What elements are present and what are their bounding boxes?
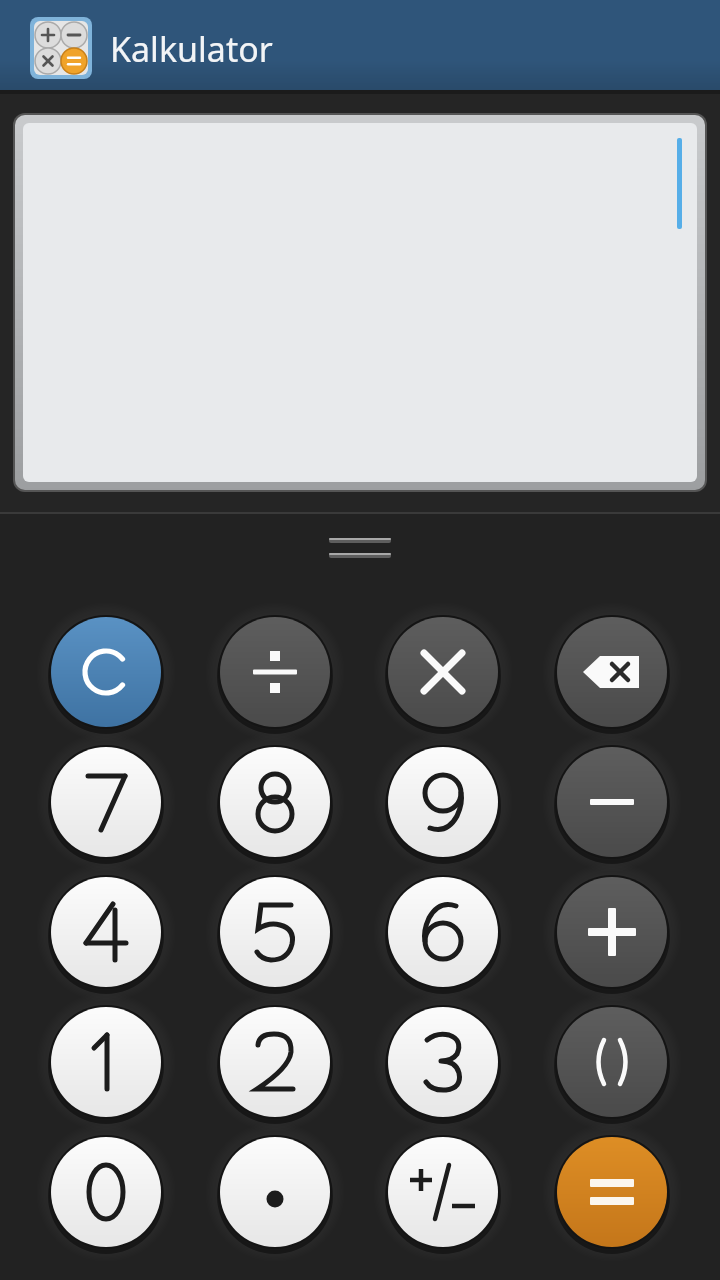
button[interactable]: 5 [219,876,331,988]
button[interactable]: +/− [387,1136,499,1248]
button[interactable]: + [556,876,668,988]
button[interactable]: 1 [50,1006,162,1118]
button[interactable]: ⌫ [556,616,668,728]
button[interactable]: 0 [50,1136,162,1248]
button[interactable]: C [50,616,162,728]
button[interactable]: 4 [50,876,162,988]
button[interactable]: ÷ [219,616,331,728]
staticText: Kalkulator [110,26,273,72]
button[interactable]: 6 [387,876,499,988]
button[interactable]: − [556,746,668,858]
button[interactable]: 9 [387,746,499,858]
button[interactable]: 2 [219,1006,331,1118]
button[interactable]: 7 [50,746,162,858]
button[interactable]: . [219,1136,331,1248]
button[interactable]: 3 [387,1006,499,1118]
button[interactable]: () [556,1006,668,1118]
button[interactable]: = [556,1136,668,1248]
button[interactable]: 8 [219,746,331,858]
button[interactable]: × [387,616,499,728]
button[interactable]: Display [13,113,707,492]
